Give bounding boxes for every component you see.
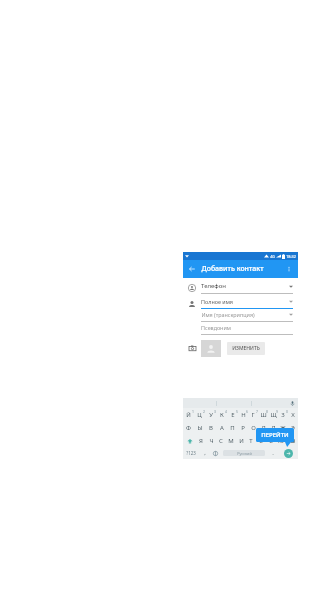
- staticText: ,: [204, 449, 206, 457]
- staticText: У: [209, 411, 213, 419]
- staticText: Добавить контакт: [201, 264, 264, 274]
- button[interactable]: А: [216, 421, 227, 434]
- button[interactable]: Ч: [206, 434, 216, 447]
- staticText: ПЕРЕЙТИ: [261, 431, 289, 439]
- button[interactable]: Фото контакта: [201, 340, 221, 357]
- button[interactable]: Ю: [276, 434, 286, 447]
- button[interactable]: Н: [238, 408, 248, 421]
- button[interactable]: М: [226, 434, 236, 447]
- staticText: ?123: [186, 450, 196, 456]
- staticText: М: [228, 437, 234, 445]
- staticText: Я: [199, 437, 203, 445]
- button[interactable]: О: [248, 421, 258, 434]
- staticText: 7: [256, 409, 258, 414]
- button[interactable]: Удалить: [286, 434, 298, 447]
- button[interactable]: Ж: [278, 421, 288, 434]
- staticText: О: [251, 424, 256, 432]
- staticText: Ч: [209, 437, 214, 445]
- staticText: Л: [261, 424, 266, 432]
- button[interactable]: Д: [268, 421, 278, 434]
- staticText: 0: [286, 409, 288, 414]
- button[interactable]: Назад: [183, 260, 201, 278]
- staticText: Ж: [280, 424, 286, 432]
- button[interactable]: Е: [227, 408, 238, 421]
- button[interactable]: У: [205, 408, 216, 421]
- staticText: Щ: [270, 411, 277, 419]
- button[interactable]: Л: [258, 421, 268, 434]
- button[interactable]: Ещё: [281, 261, 297, 277]
- staticText: 4G: [270, 254, 275, 259]
- staticText: Ь: [259, 437, 263, 445]
- button[interactable]: Ь: [256, 434, 266, 447]
- button[interactable]: Щ: [268, 408, 278, 421]
- button[interactable]: ,: [199, 447, 210, 459]
- staticText: И: [239, 437, 244, 445]
- button[interactable]: Г: [248, 408, 258, 421]
- staticText: Ы: [197, 424, 203, 432]
- button[interactable]: Русский: [223, 450, 265, 456]
- staticText: 3: [214, 409, 216, 414]
- button[interactable]: Телефон: [183, 281, 298, 295]
- button[interactable]: В: [205, 421, 216, 434]
- staticText: 5: [236, 409, 238, 414]
- staticText: Ц: [197, 411, 202, 419]
- staticText: 18:32: [286, 254, 296, 259]
- button[interactable]: И: [236, 434, 246, 447]
- staticText: 6: [246, 409, 248, 414]
- staticText: .: [272, 449, 274, 457]
- button[interactable]: Ы: [194, 421, 205, 434]
- button[interactable]: Х: [288, 408, 298, 421]
- staticText: Русский: [237, 451, 252, 456]
- staticText: З: [281, 411, 285, 419]
- button[interactable]: З: [278, 408, 288, 421]
- staticText: Имя (транскрипция): [201, 311, 255, 318]
- button[interactable]: К: [216, 408, 227, 421]
- button[interactable]: Ш: [258, 408, 268, 421]
- button[interactable]: .: [267, 447, 278, 459]
- staticText: В: [209, 424, 213, 432]
- button[interactable]: Э: [288, 421, 298, 434]
- button[interactable]: Сменить язык: [210, 447, 221, 459]
- button[interactable]: Ц: [194, 408, 205, 421]
- staticText: ИЗМЕНИТЬ: [232, 345, 260, 352]
- button[interactable]: Псевдоним: [183, 323, 298, 336]
- staticText: Б: [269, 437, 273, 445]
- button[interactable]: Перейти: [284, 449, 293, 458]
- staticText: Ф: [186, 424, 191, 432]
- button[interactable]: ИЗМЕНИТЬ: [227, 342, 265, 355]
- staticText: Ш: [260, 411, 267, 419]
- staticText: Телефон: [201, 282, 226, 290]
- staticText: А: [220, 424, 224, 432]
- staticText: Д: [271, 424, 276, 432]
- staticText: Э: [291, 424, 295, 432]
- staticText: Псевдоним: [201, 324, 231, 331]
- staticText: Й: [186, 411, 191, 419]
- button[interactable]: Ф: [183, 421, 194, 434]
- staticText: Н: [241, 411, 246, 419]
- button[interactable]: Б: [266, 434, 276, 447]
- button[interactable]: Я: [196, 434, 206, 447]
- staticText: П: [230, 424, 235, 432]
- button[interactable]: Голосовой ввод: [286, 398, 298, 408]
- staticText: Ю: [278, 437, 284, 445]
- staticText: 8: [266, 409, 268, 414]
- button[interactable]: П: [227, 421, 238, 434]
- button[interactable]: Имя (транскрипция): [183, 310, 298, 323]
- button[interactable]: ?123: [183, 447, 199, 459]
- staticText: Г: [251, 411, 255, 419]
- staticText: Е: [231, 411, 235, 419]
- button[interactable]: Полное имя: [183, 297, 298, 310]
- staticText: 1: [192, 409, 194, 414]
- staticText: Полное имя: [201, 298, 233, 305]
- staticText: Т: [249, 437, 253, 445]
- button[interactable]: Й: [183, 408, 194, 421]
- button[interactable]: С: [216, 434, 226, 447]
- staticText: 2: [203, 409, 205, 414]
- button[interactable]: Р: [238, 421, 248, 434]
- staticText: 9: [276, 409, 278, 414]
- button[interactable]: Т: [246, 434, 256, 447]
- button[interactable]: Shift: [183, 434, 196, 447]
